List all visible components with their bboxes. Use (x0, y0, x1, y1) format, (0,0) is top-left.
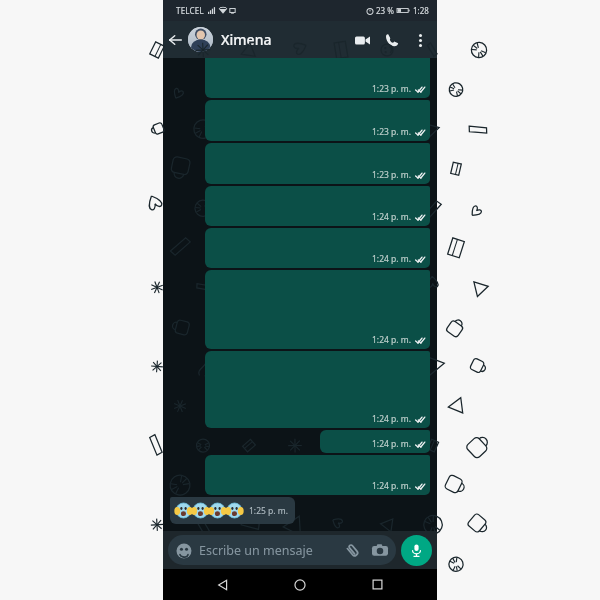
button[interactable]: 1:24 p. m. (320, 430, 430, 453)
button[interactable]: Attach (343, 541, 362, 560)
staticText: 1:24 p. m. (372, 438, 412, 450)
button[interactable]: Call (377, 25, 407, 55)
button[interactable]: 1:24 p. m. (205, 228, 430, 268)
staticText: 1:24 p. m. (372, 480, 412, 492)
staticText: 1:24 p. m. (372, 253, 412, 265)
button[interactable]: 1:25 p. m. (170, 497, 295, 524)
button[interactable]: Emoji (175, 542, 192, 559)
button[interactable]: Back (206, 569, 240, 600)
staticText: 23 % (376, 5, 394, 16)
button[interactable]: 1:23 p. m. (205, 143, 430, 184)
button[interactable]: Voice message (401, 535, 432, 566)
staticText: 1:24 p. m. (372, 413, 412, 425)
button[interactable]: 1:23 p. m. (205, 58, 430, 98)
staticText: Escribe un mensaje (199, 542, 343, 559)
button[interactable]: 1:24 p. m. (205, 351, 430, 428)
button[interactable]: 1:24 p. m. (205, 455, 430, 495)
staticText: 1:24 p. m. (372, 334, 412, 346)
staticText: Ximena (221, 30, 272, 49)
button[interactable]: 1:24 p. m. (205, 270, 430, 349)
button[interactable]: Home (283, 569, 317, 600)
button[interactable]: 1:24 p. m. (205, 186, 430, 226)
button[interactable]: 1:23 p. m. (205, 100, 430, 141)
button[interactable]: Recent apps (360, 569, 394, 600)
button[interactable]: Emoji (168, 535, 396, 565)
staticText: 1:23 p. m. (372, 83, 412, 95)
button[interactable]: Video call (347, 25, 377, 55)
staticText: TELCEL (176, 5, 204, 16)
staticText: 1:23 p. m. (372, 126, 412, 138)
staticText: 1:23 p. m. (372, 169, 412, 181)
staticText: 1:25 p. m. (249, 505, 289, 517)
button[interactable]: More options (407, 27, 433, 53)
staticText: 1:28 (413, 5, 429, 16)
staticText: 1:24 p. m. (372, 211, 412, 223)
button[interactable]: Camera (370, 541, 389, 560)
button[interactable]: Ximena (188, 21, 347, 58)
button[interactable]: Back (163, 28, 187, 52)
